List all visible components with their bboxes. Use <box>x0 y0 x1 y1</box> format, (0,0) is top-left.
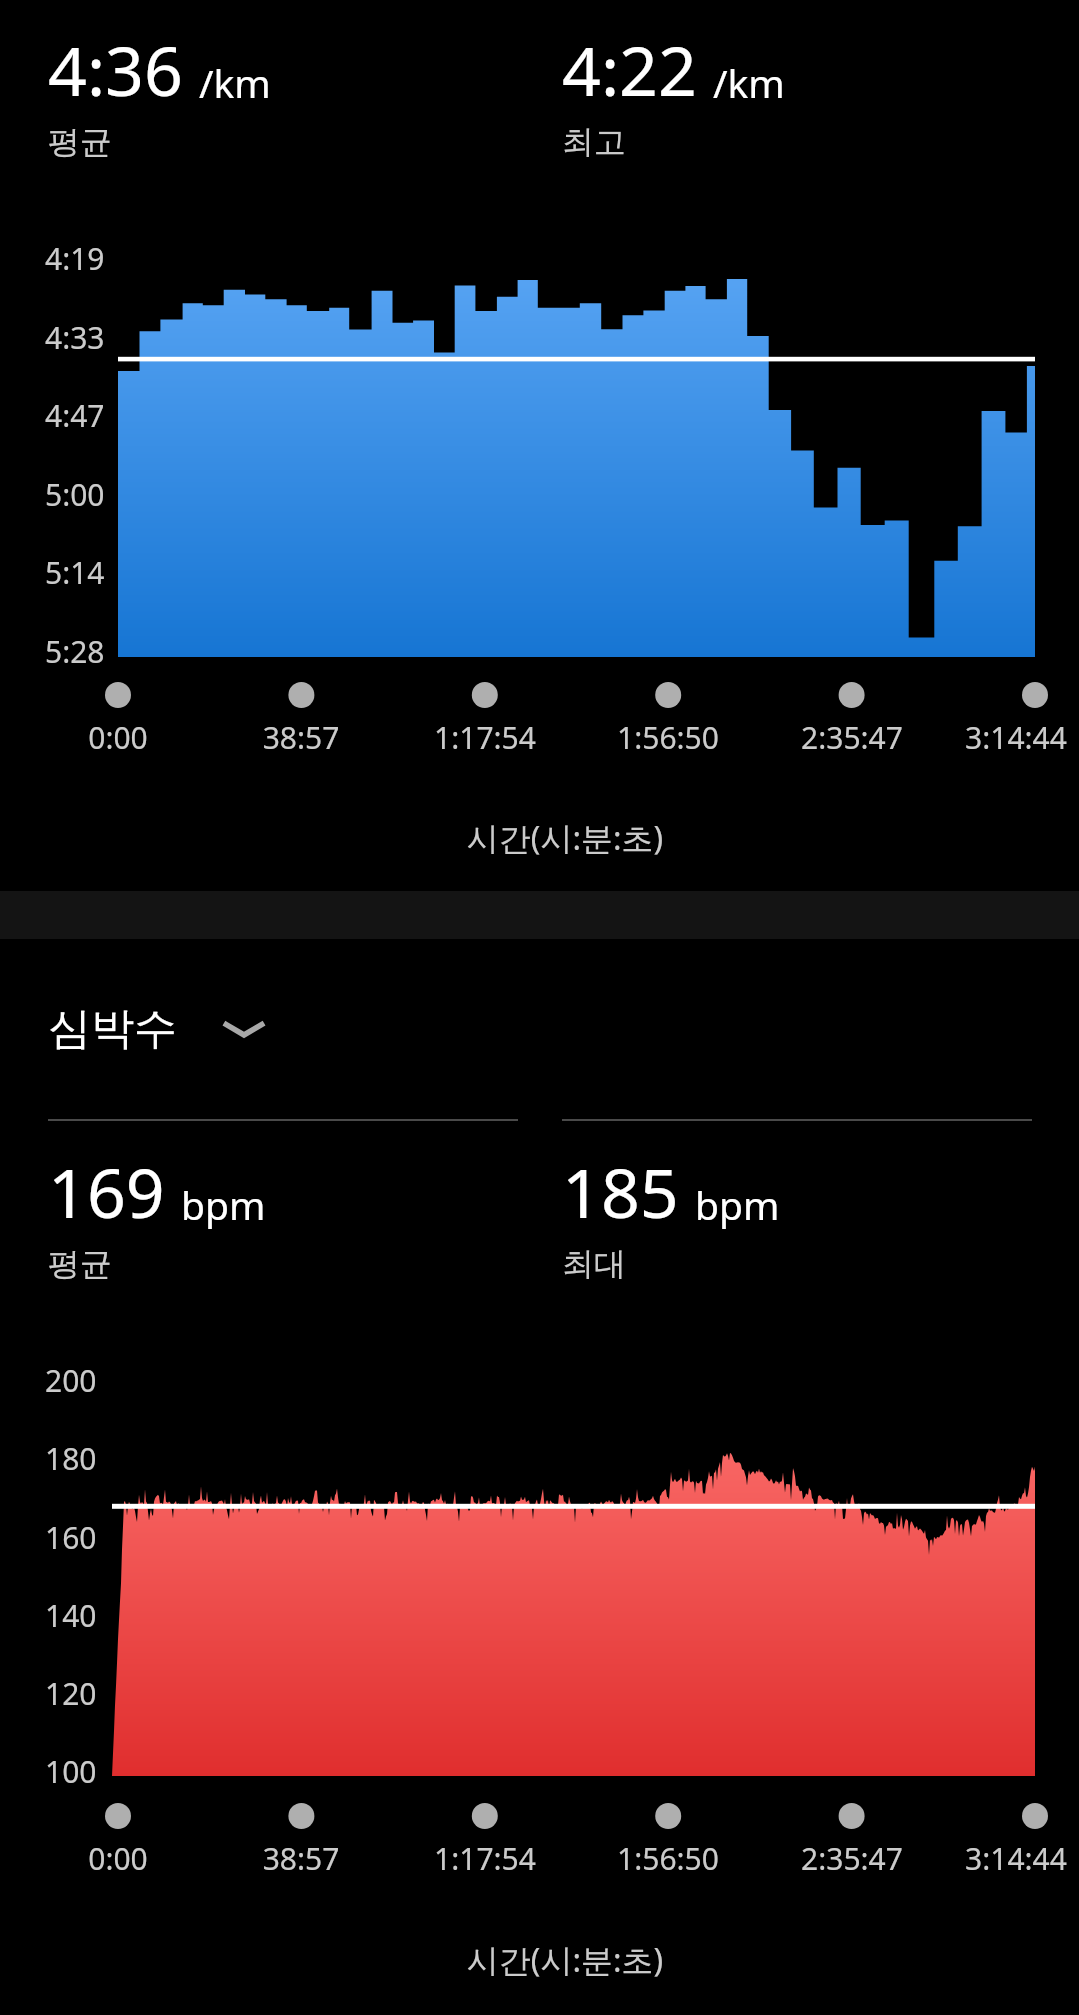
staticText: 심박수 <box>48 1002 177 1056</box>
staticText: 최대 <box>562 1244 626 1284</box>
button[interactable]: 185 <box>562 1145 1002 1279</box>
button[interactable]: Heart rate graph <box>30 1358 1050 1846</box>
staticText: /km <box>713 56 785 109</box>
staticText: 160 <box>45 1517 97 1558</box>
staticText: 최고 <box>562 122 626 162</box>
staticText: 185 <box>562 1145 679 1238</box>
staticText: 0:00 <box>0 1838 268 1879</box>
staticText: 38:57 <box>151 1838 451 1879</box>
staticText: bpm <box>181 1178 266 1231</box>
staticText: 시간(시:분:초) <box>415 1938 715 1982</box>
staticText: 4:22 <box>562 23 697 116</box>
staticText: 100 <box>45 1751 97 1792</box>
staticText: 3:14:44 <box>866 1838 1079 1879</box>
staticText: 200 <box>45 1360 97 1401</box>
staticText: 4:33 <box>45 317 105 358</box>
staticText: 평균 <box>48 122 112 162</box>
button[interactable]: 169 <box>48 1145 488 1279</box>
staticText: /km <box>199 56 271 109</box>
staticText: 4:36 <box>48 23 183 116</box>
staticText: 1:17:54 <box>335 717 635 758</box>
button[interactable]: 4:22 <box>562 23 1002 157</box>
staticText: 180 <box>45 1438 97 1479</box>
staticText: bpm <box>695 1178 780 1231</box>
staticText: 1:56:50 <box>518 1838 818 1879</box>
staticText: 38:57 <box>151 717 451 758</box>
staticText: 5:00 <box>45 474 105 515</box>
staticText: 140 <box>45 1595 97 1636</box>
other: Collapse heart rate <box>221 1006 267 1052</box>
staticText: 5:28 <box>45 631 105 672</box>
staticText: 3:14:44 <box>866 717 1079 758</box>
staticText: 1:17:54 <box>335 1838 635 1879</box>
staticText: 120 <box>45 1673 97 1714</box>
staticText: 4:19 <box>45 238 105 279</box>
staticText: 2:35:47 <box>702 1838 1002 1879</box>
staticText: 169 <box>48 1145 165 1238</box>
staticText: 0:00 <box>0 717 268 758</box>
staticText: 평균 <box>48 1244 112 1284</box>
staticText: 1:56:50 <box>518 717 818 758</box>
staticText: 2:35:47 <box>702 717 1002 758</box>
button[interactable]: Pace graph <box>30 235 1050 725</box>
staticText: 5:14 <box>45 552 105 593</box>
button[interactable]: 심박수 <box>42 996 273 1062</box>
button[interactable]: 4:36 <box>48 23 488 157</box>
staticText: 4:47 <box>45 395 105 436</box>
staticText: 시간(시:분:초) <box>415 816 715 860</box>
